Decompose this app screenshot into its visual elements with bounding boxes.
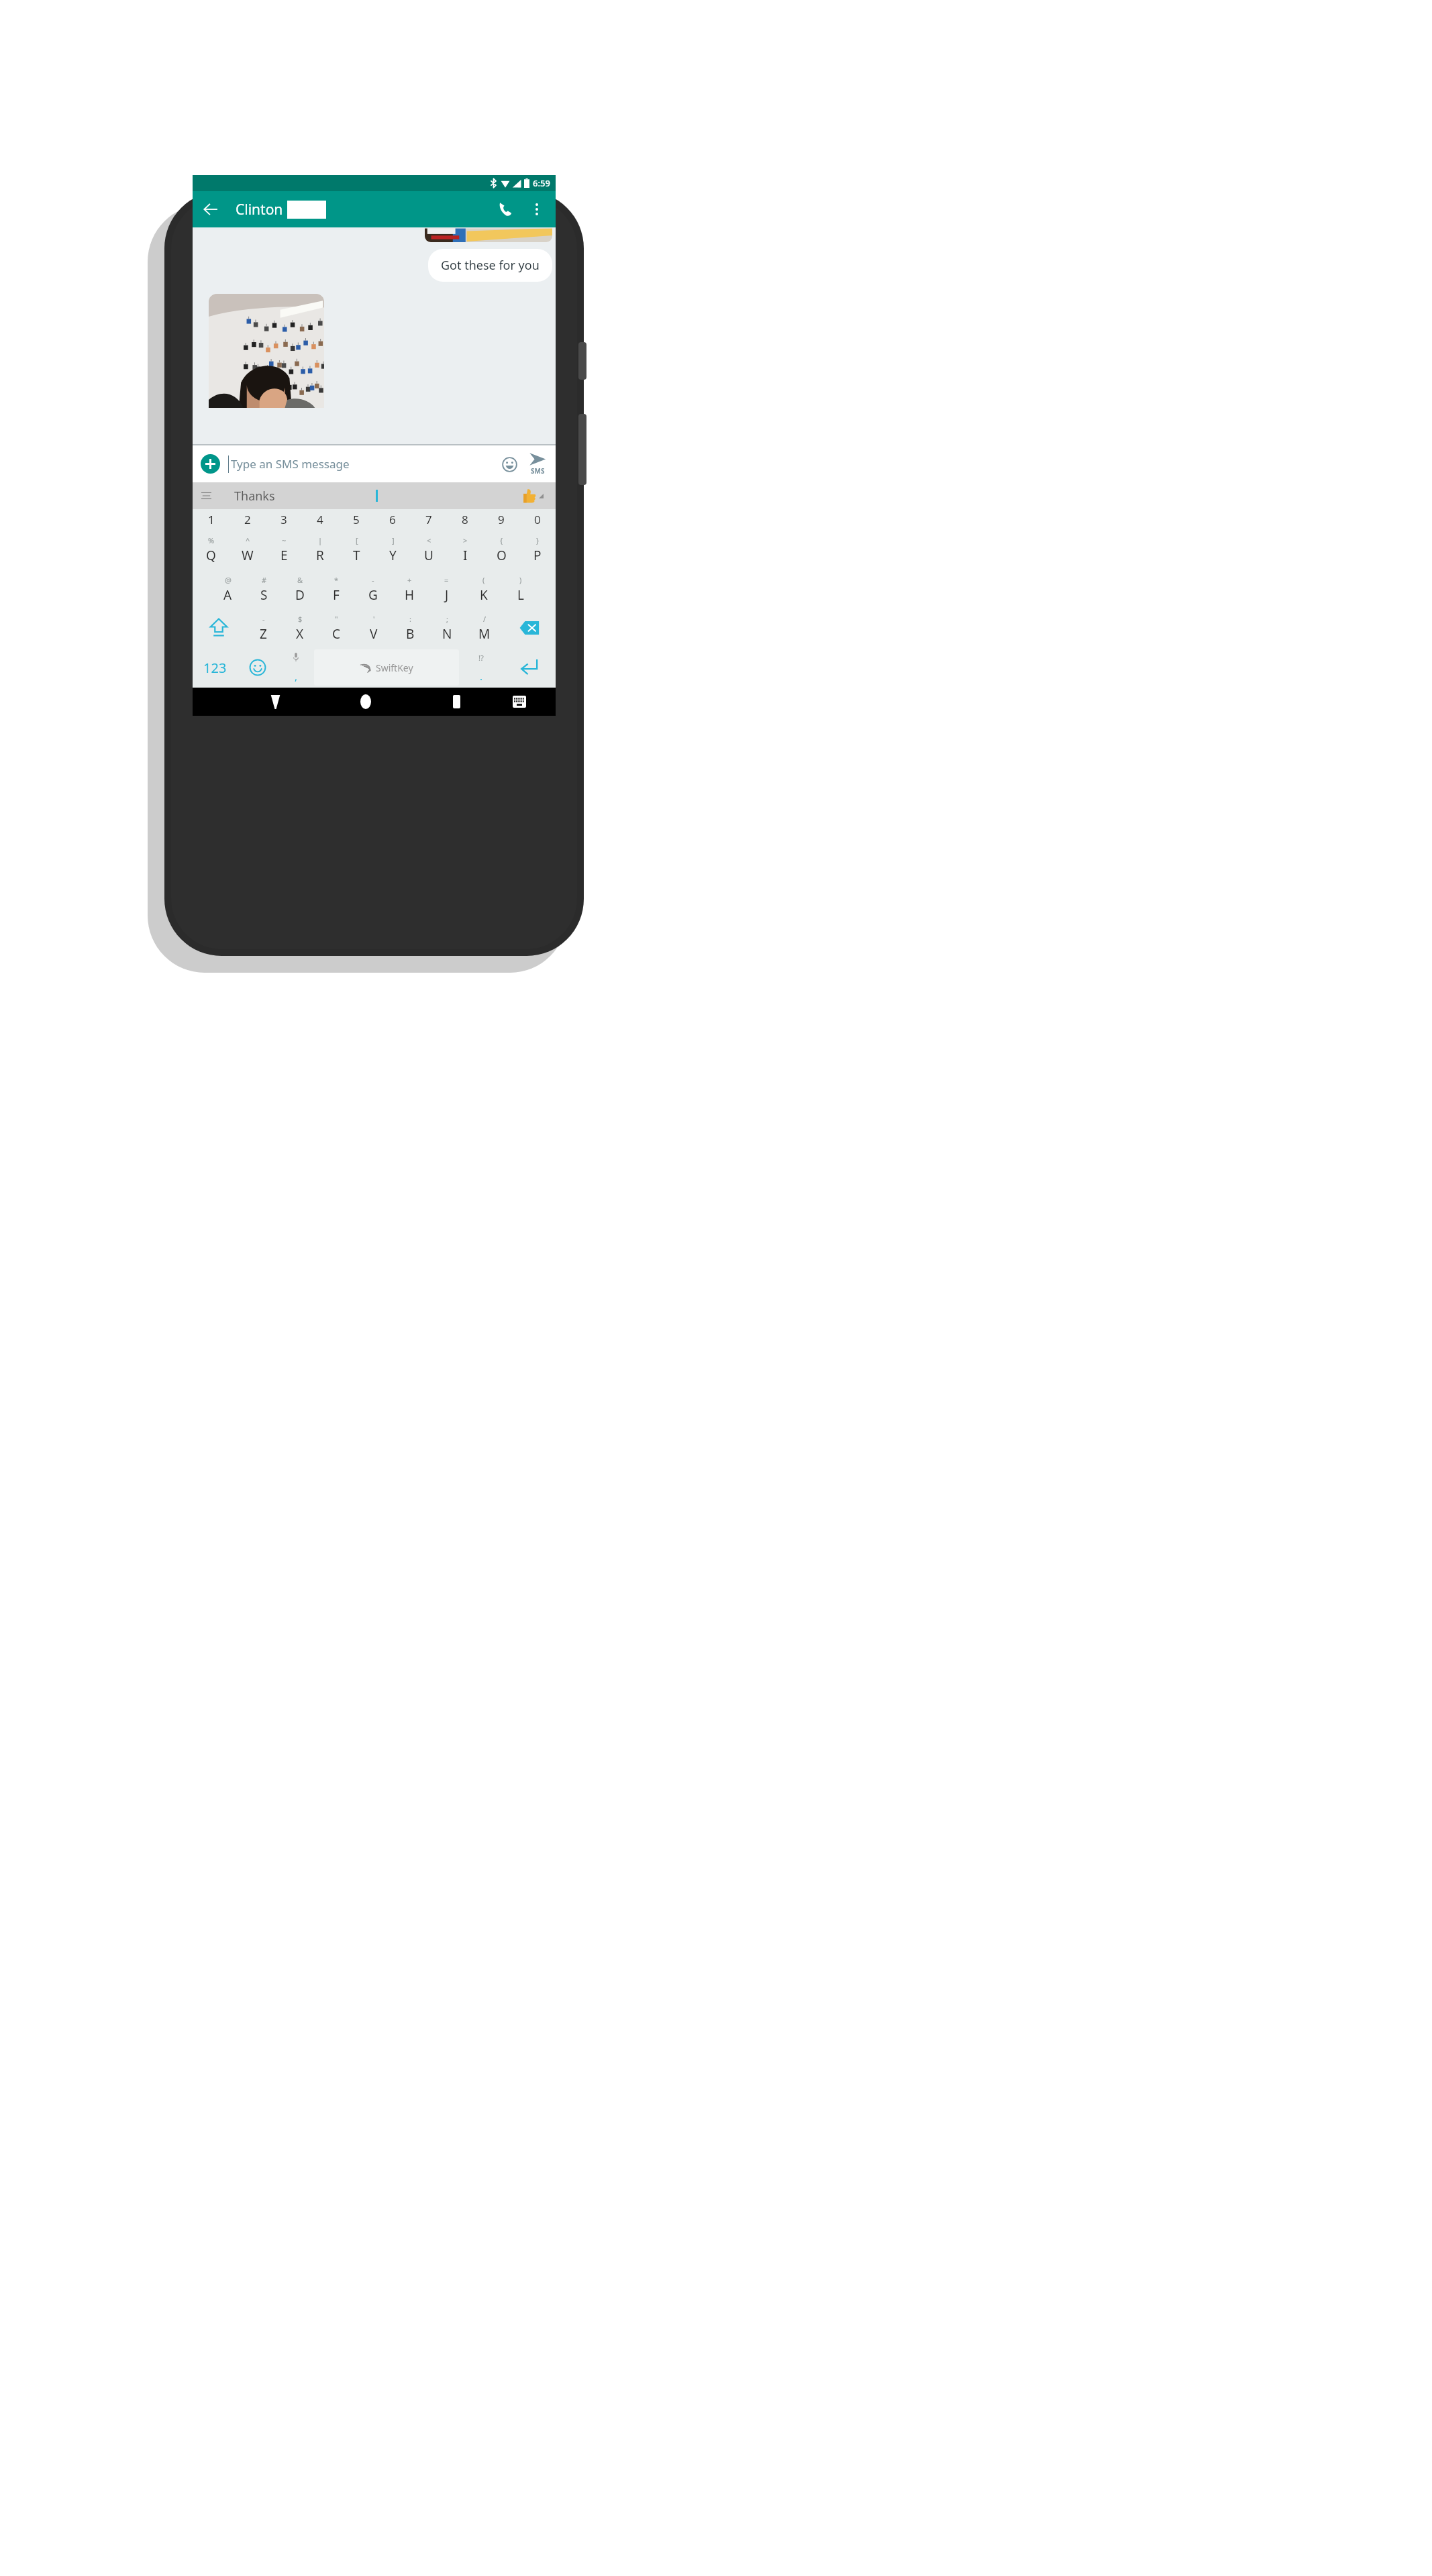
button[interactable]: ( [465, 570, 502, 608]
button[interactable]: % [193, 529, 229, 570]
staticText: I [463, 547, 468, 564]
button[interactable]: Emoji keyboard [238, 647, 278, 688]
staticText: : [409, 614, 411, 624]
button[interactable]: Got these for you [428, 249, 552, 282]
button[interactable]: Clinton [236, 200, 326, 219]
staticText: 1 [208, 512, 215, 527]
button[interactable]: { [483, 529, 519, 570]
button[interactable]: > [447, 529, 483, 570]
button[interactable]: " [318, 608, 355, 647]
staticText: $ [298, 614, 303, 624]
staticText: M [478, 625, 491, 643]
staticText: 2 [244, 512, 251, 527]
button[interactable]: ] [374, 529, 411, 570]
button[interactable]: | [302, 529, 338, 570]
button[interactable] [209, 294, 324, 408]
button[interactable]: Call [489, 193, 522, 226]
button[interactable]: 0 [519, 509, 556, 529]
staticText: 7 [425, 512, 432, 527]
staticText: J [445, 586, 449, 604]
button[interactable]: + [391, 570, 428, 608]
button[interactable]: @ [209, 570, 246, 608]
staticText: L [517, 586, 524, 604]
staticText: F [333, 586, 340, 604]
button[interactable]: / [466, 608, 503, 647]
button[interactable]: 9 [483, 509, 519, 529]
button[interactable]: * [318, 570, 354, 608]
staticText: S [260, 586, 268, 604]
staticText: P [533, 547, 542, 564]
staticText: ] [392, 535, 395, 545]
button[interactable]: ) [502, 570, 539, 608]
button[interactable]: & [282, 570, 318, 608]
staticText: % [208, 535, 215, 545]
button[interactable]: [ [338, 529, 374, 570]
button[interactable]: 2 [229, 509, 266, 529]
button[interactable]: ^ [229, 529, 266, 570]
button[interactable]: Shift [193, 608, 245, 647]
button[interactable] [425, 227, 552, 242]
button[interactable]: - [354, 570, 391, 608]
staticText: ~ [282, 535, 287, 545]
staticText: | [318, 535, 323, 545]
staticText: R [316, 547, 324, 564]
staticText: { [500, 535, 503, 545]
button[interactable]: 4 [302, 509, 338, 529]
button[interactable]: Back [193, 191, 229, 227]
button[interactable]: Space [314, 649, 459, 686]
button[interactable]: More options [522, 195, 552, 224]
button[interactable]: Keyboard menu [193, 482, 219, 509]
button[interactable]: 6 [374, 509, 411, 529]
staticText: E [280, 547, 288, 564]
staticText: ^ [246, 535, 250, 545]
button[interactable]: 1 [193, 509, 229, 529]
button[interactable]: Add attachment [201, 454, 220, 474]
button[interactable]: Thumbs up emoji [521, 488, 536, 503]
button[interactable]: : [392, 608, 429, 647]
button[interactable]: $ [281, 608, 318, 647]
button[interactable]: 5 [338, 509, 374, 529]
button[interactable]: Type an SMS message [231, 456, 497, 472]
staticText: ( [482, 575, 485, 585]
staticText: - [262, 614, 265, 624]
button[interactable]: Emoji [497, 451, 522, 477]
button[interactable]: 7 [411, 509, 447, 529]
button[interactable]: # [246, 570, 282, 608]
staticText: [ [356, 535, 358, 545]
button[interactable]: - [245, 608, 281, 647]
button[interactable]: ' [355, 608, 392, 647]
staticText: # [262, 575, 267, 585]
button[interactable]: Thanks [234, 488, 275, 504]
staticText: } [536, 535, 540, 545]
button[interactable]: Backspace [503, 608, 556, 647]
button[interactable]: } [519, 529, 556, 570]
staticText: + [407, 575, 412, 585]
staticText: A [223, 586, 232, 604]
button[interactable]: Enter [503, 647, 556, 688]
button[interactable]: ~ [266, 529, 302, 570]
button[interactable]: 8 [447, 509, 483, 529]
button[interactable]: !? [459, 647, 503, 688]
staticText: T [353, 547, 360, 564]
button[interactable]: Send SMS [523, 452, 552, 476]
staticText: O [497, 547, 507, 564]
button[interactable]: Home [351, 688, 380, 716]
button[interactable]: = [428, 570, 465, 608]
button[interactable]: 3 [266, 509, 302, 529]
staticText: SwiftKey [376, 661, 413, 674]
button[interactable]: ; [429, 608, 466, 647]
staticText: H [405, 586, 415, 604]
button[interactable]: < [411, 529, 447, 570]
staticText: 9 [498, 512, 505, 527]
staticText: = [444, 575, 449, 585]
staticText: V [370, 625, 378, 643]
button[interactable]: Back [260, 688, 290, 716]
button[interactable]: Recent apps [442, 688, 471, 716]
button[interactable]: 123 [193, 647, 238, 688]
staticText: , [295, 669, 298, 683]
button[interactable]: Switch keyboard [505, 688, 534, 716]
button[interactable]: Comma and voice input [278, 647, 314, 688]
staticText: C [332, 625, 341, 643]
staticText: SMS [531, 466, 545, 476]
staticText: 0 [534, 512, 541, 527]
